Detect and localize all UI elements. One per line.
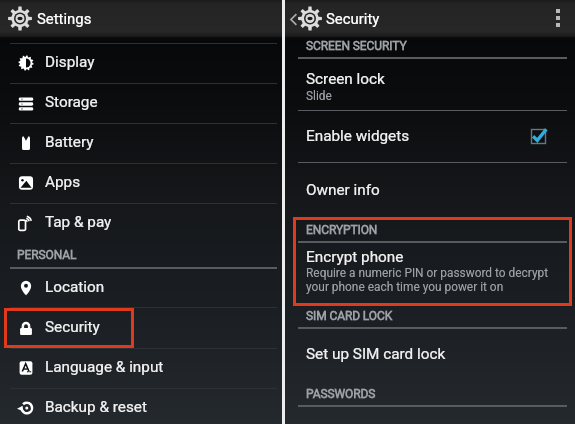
staticText: Display [45, 53, 95, 71]
button[interactable]: Owner info [285, 162, 575, 218]
staticText: PERSONAL [17, 248, 77, 262]
staticText: Security [45, 318, 100, 336]
button[interactable]: Set up SIM card lock [285, 331, 575, 377]
staticText: Settings [37, 10, 92, 27]
button[interactable]: Language & input [0, 348, 282, 388]
staticText: Storage [45, 93, 98, 111]
staticText: SIM CARD LOCK [306, 309, 393, 323]
button[interactable]: Enable widgets [285, 111, 575, 161]
staticText: Location [45, 278, 105, 296]
staticText: Screen lock [306, 70, 385, 88]
button[interactable]: Location [0, 269, 282, 307]
staticText: ENCRYPTION [306, 223, 378, 237]
button[interactable]: Screen lock [285, 60, 575, 111]
staticText: PASSWORDS [306, 387, 376, 401]
button[interactable]: Backup & reset [0, 388, 282, 424]
staticText: Set up SIM card lock [306, 345, 446, 363]
staticText: Tap & pay [45, 213, 112, 231]
button[interactable]: Tap & pay [0, 203, 282, 243]
staticText: Enable widgets [306, 127, 410, 145]
button[interactable]: Battery [0, 123, 282, 163]
staticText: Backup & reset [45, 398, 147, 416]
staticText: Security [326, 10, 380, 27]
staticText: Owner info [306, 181, 380, 199]
button[interactable]: More options [543, 0, 575, 38]
staticText: Slide [306, 89, 332, 103]
staticText: SCREEN SECURITY [306, 39, 407, 53]
button[interactable]: Storage [0, 83, 282, 123]
staticText: Battery [45, 133, 94, 151]
button[interactable]: Apps [0, 163, 282, 203]
button[interactable]: Display [0, 43, 282, 83]
staticText: Language & input [45, 358, 164, 376]
button[interactable]: Security [0, 308, 282, 347]
staticText: Require a numeric PIN or password to dec… [306, 266, 546, 294]
staticText: Encrypt phone [306, 248, 404, 266]
staticText: Apps [45, 173, 81, 191]
button[interactable]: Encrypt phone [285, 240, 575, 302]
